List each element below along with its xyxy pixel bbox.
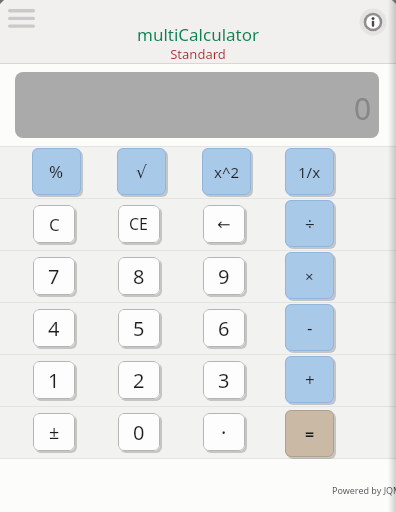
staticText: 8	[133, 263, 145, 290]
staticText: 1/x	[298, 162, 321, 182]
staticText: +	[305, 368, 315, 391]
staticText: x^2	[214, 162, 240, 182]
button[interactable]: 1	[33, 361, 75, 399]
button[interactable]: 0	[118, 413, 160, 451]
button[interactable]: C	[33, 205, 75, 243]
staticText: 9	[218, 263, 230, 290]
button[interactable]: x^2	[202, 148, 251, 195]
staticText: ←	[217, 215, 231, 234]
button[interactable]: =	[285, 410, 334, 457]
staticText: ×	[305, 266, 314, 286]
staticText: ±	[49, 420, 60, 445]
staticText: 2	[133, 367, 145, 394]
button[interactable]: 3	[203, 361, 245, 399]
staticText: 6	[218, 315, 230, 342]
button[interactable]	[6, 6, 38, 31]
staticText: 7	[48, 263, 60, 290]
button[interactable]: CE	[118, 205, 160, 243]
button[interactable]: 8	[118, 257, 160, 295]
button[interactable]: ←	[203, 205, 245, 243]
button[interactable]	[358, 7, 388, 37]
staticText: Standard	[0, 45, 396, 63]
button[interactable]: -	[285, 304, 334, 351]
staticText: =	[305, 423, 315, 445]
button[interactable]: ×	[285, 252, 334, 299]
staticText: %	[49, 160, 64, 183]
button[interactable]: 6	[203, 309, 245, 347]
staticText: multiCalculator	[0, 23, 396, 46]
staticText: 1	[48, 367, 60, 394]
staticText: -	[307, 316, 313, 339]
button[interactable]: ·	[203, 413, 245, 451]
staticText: 0	[133, 419, 145, 446]
staticText: C	[49, 213, 60, 236]
staticText: CE	[129, 213, 149, 235]
button[interactable]: 2	[118, 361, 160, 399]
staticText: 5	[133, 315, 145, 342]
staticText: 3	[218, 367, 230, 394]
button[interactable]: %	[32, 148, 81, 195]
button[interactable]: 4	[33, 309, 75, 347]
staticText: √	[136, 162, 147, 182]
staticText: 0	[354, 88, 372, 129]
button[interactable]: √	[117, 148, 166, 195]
button[interactable]: ÷	[285, 200, 334, 247]
staticText: ÷	[305, 212, 315, 235]
staticText: Powered by JQM	[332, 484, 396, 496]
staticText: ·	[221, 419, 227, 446]
button[interactable]: ±	[33, 413, 75, 451]
staticText: 4	[48, 315, 60, 342]
button[interactable]: 5	[118, 309, 160, 347]
button[interactable]: +	[285, 356, 334, 403]
button[interactable]: 1/x	[285, 148, 334, 195]
button[interactable]: 7	[33, 257, 75, 295]
button[interactable]: 9	[203, 257, 245, 295]
